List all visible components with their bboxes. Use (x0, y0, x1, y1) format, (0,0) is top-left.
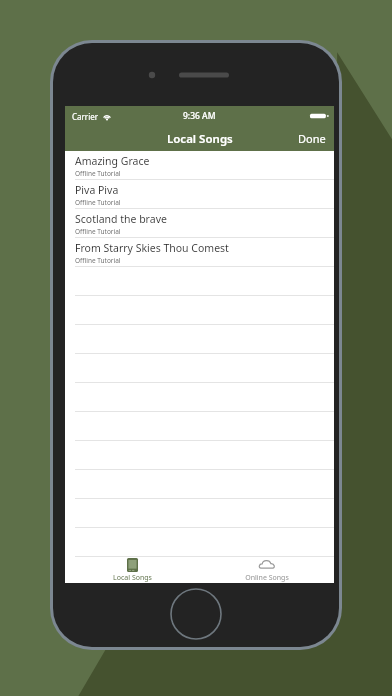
button[interactable]: Online Songs (199, 557, 334, 583)
button[interactable]: Done (290, 126, 334, 151)
staticText: Local Songs (113, 573, 152, 583)
staticText: Amazing Grace (75, 154, 150, 168)
staticText: Piva Piva (75, 183, 119, 197)
button[interactable]: Amazing Grace (65, 151, 334, 179)
staticText: From Starry Skies Thou Comest (75, 241, 229, 255)
staticText: Scotland the brave (75, 212, 167, 226)
staticText: Carrier (72, 111, 99, 122)
staticText: Offline Tutorial (75, 169, 121, 178)
staticText: Offline Tutorial (75, 256, 121, 265)
staticText: 9:36 AM (183, 110, 216, 122)
button[interactable]: Local Songs (65, 557, 199, 583)
button[interactable]: Scotland the brave (65, 209, 334, 237)
staticText: Offline Tutorial (75, 198, 121, 207)
button[interactable]: Piva Piva (65, 180, 334, 208)
staticText: Local Songs (167, 131, 233, 147)
staticText: Offline Tutorial (75, 227, 121, 236)
staticText: Online Songs (245, 573, 289, 583)
button[interactable]: From Starry Skies Thou Comest (65, 238, 334, 266)
staticText: Done (298, 131, 326, 146)
